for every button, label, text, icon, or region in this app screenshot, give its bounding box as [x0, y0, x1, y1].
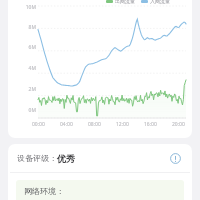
staticText: 优秀: [57, 153, 75, 164]
staticText: 8M: [28, 24, 36, 31]
staticText: 2M: [28, 86, 36, 93]
staticText: 设备评级：: [17, 153, 57, 163]
button[interactable]: 说明: [167, 150, 183, 166]
staticText: 4M: [28, 65, 36, 72]
button[interactable]: 设备评级：: [8, 144, 192, 172]
staticText: 16:00: [144, 121, 157, 128]
button[interactable]: 出网流量: [8, 0, 192, 138]
staticText: 入网流量: [150, 0, 170, 4]
staticText: 网络环境：: [24, 186, 64, 196]
staticText: 00:00: [32, 121, 45, 128]
staticText: 10M: [25, 4, 36, 11]
staticText: 20:00: [172, 121, 185, 128]
staticText: 04:00: [60, 121, 73, 128]
staticText: 12:00: [116, 121, 129, 128]
staticText: 08:00: [88, 121, 101, 128]
staticText: 0M: [28, 107, 36, 114]
staticText: 出网流量: [115, 0, 135, 4]
staticText: 6M: [28, 44, 36, 51]
